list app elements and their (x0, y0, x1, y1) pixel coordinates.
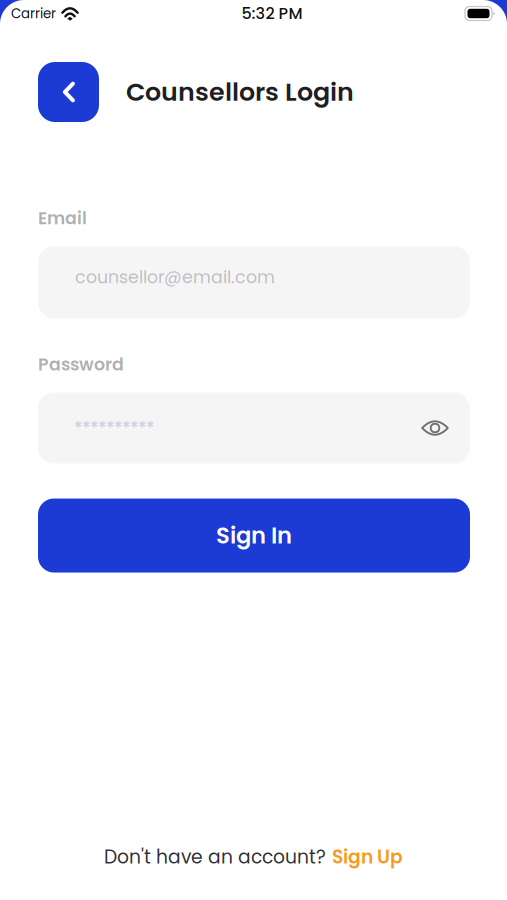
staticText: Email (38, 206, 87, 230)
staticText: Sign Up (332, 844, 403, 870)
staticText: Carrier (11, 4, 56, 23)
button[interactable]: Sign In (38, 498, 470, 572)
staticText: Password (38, 352, 124, 377)
staticText: Sign In (216, 520, 292, 551)
button[interactable]: Back (38, 62, 99, 122)
staticText: ********** (74, 416, 154, 440)
staticText: counsellor@email.com (75, 265, 275, 289)
button[interactable]: Don't have an account? (0, 836, 507, 878)
staticText: Counsellors Login (126, 74, 354, 110)
button[interactable]: counsellor@email.com (38, 246, 470, 318)
staticText: 5:32 PM (241, 2, 302, 25)
button[interactable]: Show password (416, 413, 454, 443)
staticText: Don't have an account? (104, 844, 326, 870)
